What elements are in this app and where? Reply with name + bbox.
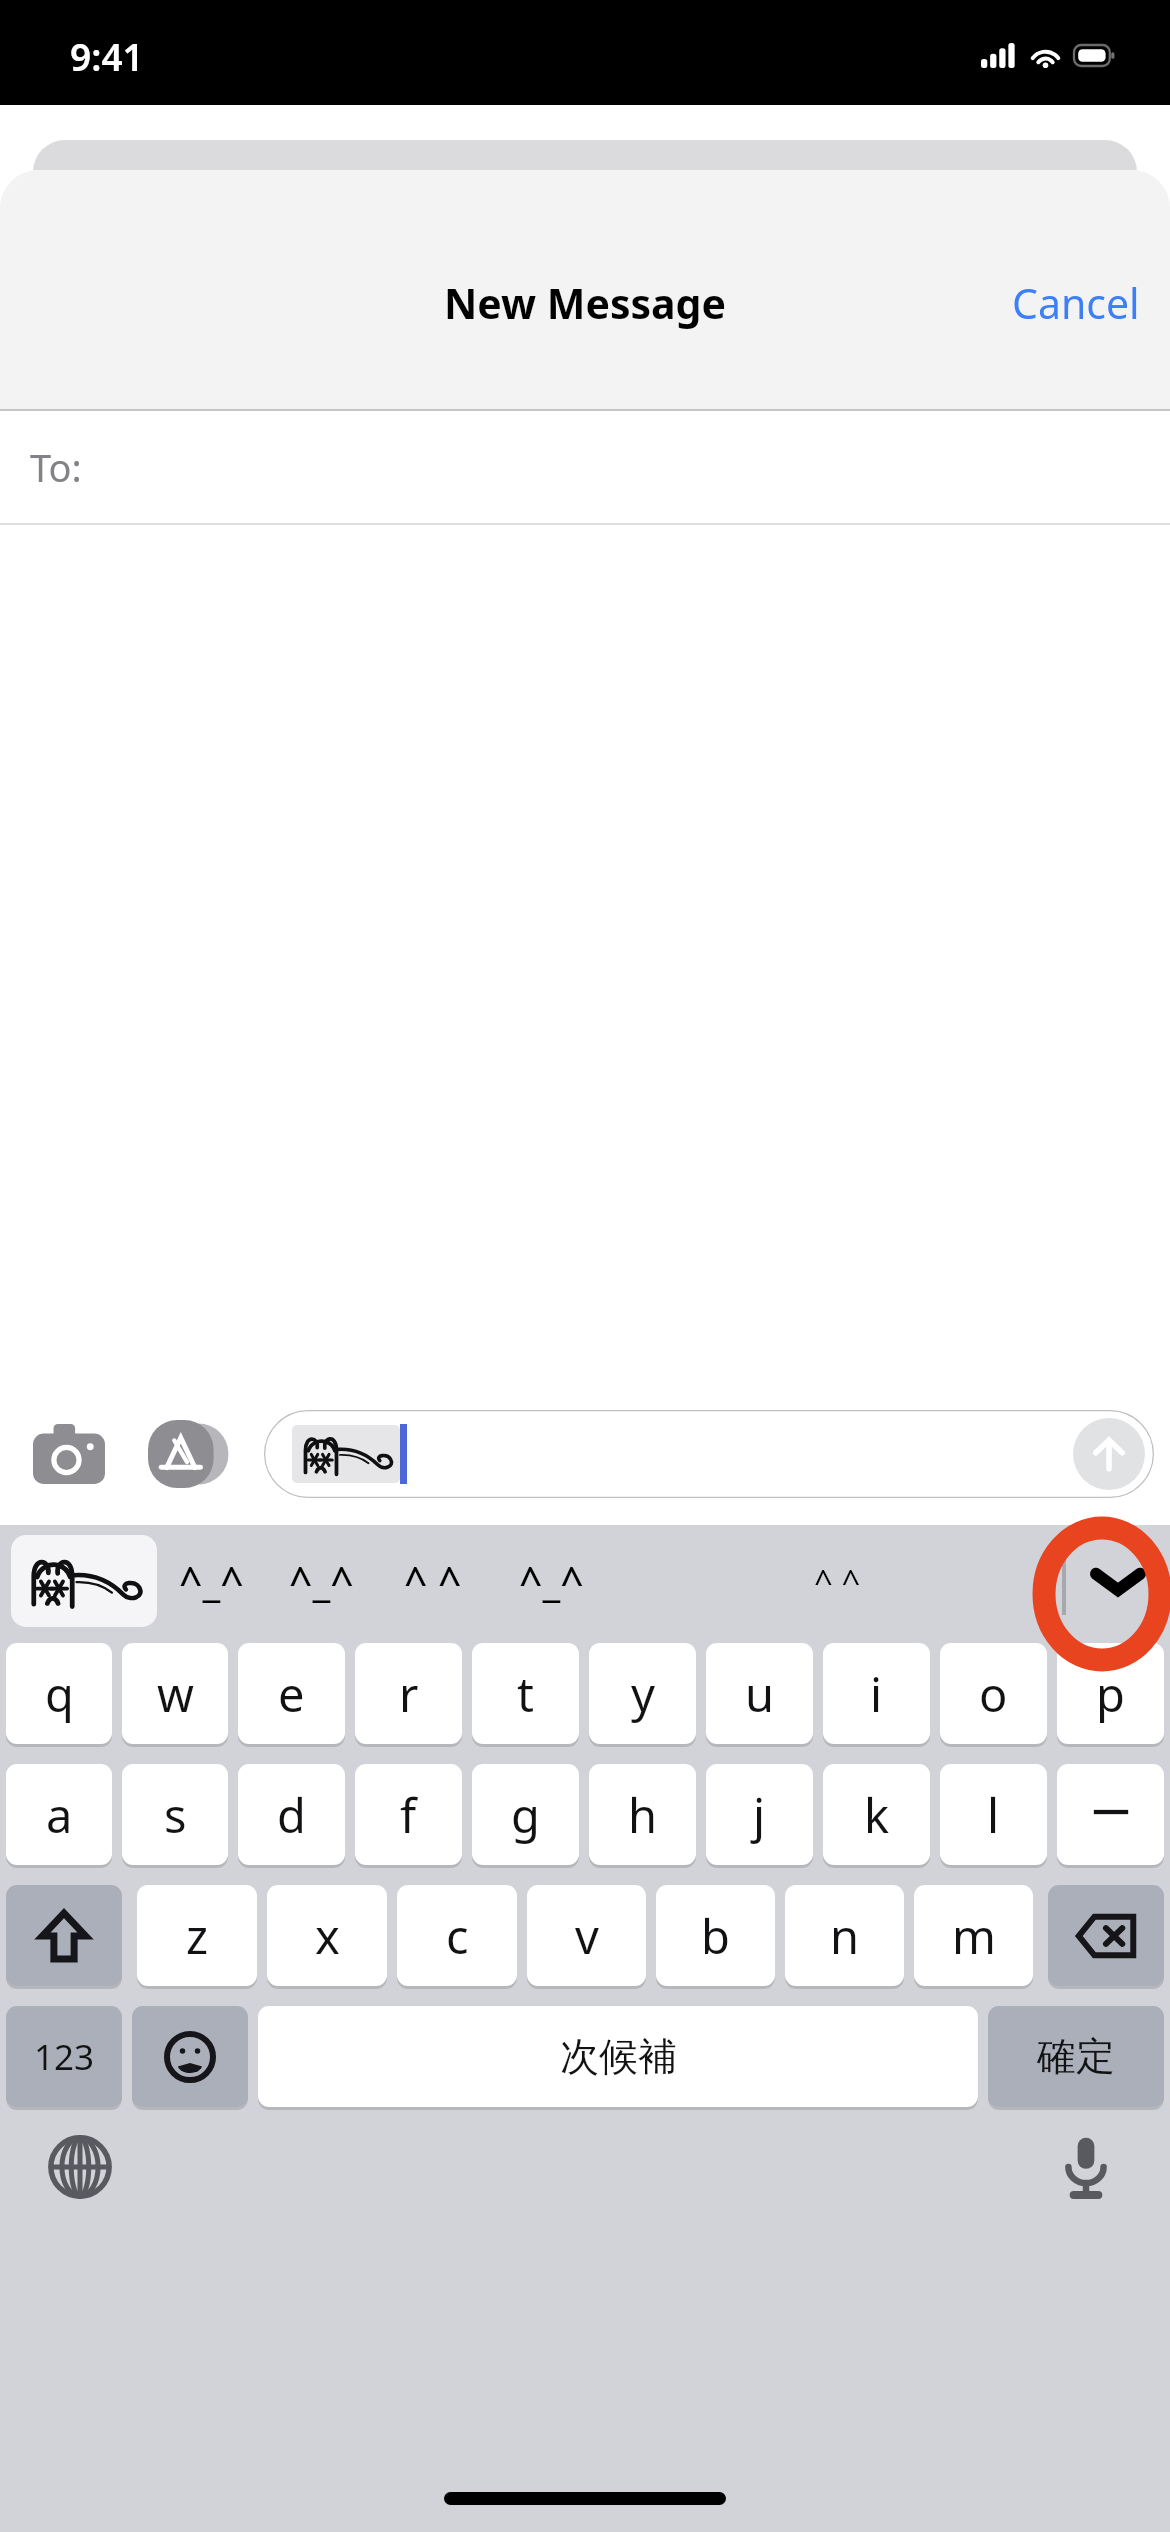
staticText: m — [952, 1904, 996, 1968]
staticText: h — [628, 1783, 658, 1847]
staticText: v — [575, 1904, 599, 1968]
button[interactable]: Camera — [20, 1405, 118, 1503]
button[interactable]: ^ ^ — [377, 1525, 489, 1637]
staticText: l — [987, 1783, 1000, 1847]
staticText: n — [830, 1904, 860, 1968]
staticText: To: — [30, 441, 82, 493]
staticText: b — [701, 1904, 730, 1968]
button[interactable]: x — [267, 1885, 387, 1986]
button[interactable]: m — [914, 1885, 1033, 1986]
staticText: u — [745, 1662, 775, 1726]
button[interactable]: j — [706, 1764, 813, 1865]
button[interactable]: Cancel — [982, 263, 1170, 343]
button[interactable]: l — [940, 1764, 1047, 1865]
staticText: 9:41 — [70, 31, 144, 81]
button[interactable]: Shift — [6, 1885, 122, 1986]
staticText: 123 — [34, 2033, 95, 2081]
staticText: 確定 — [1037, 2032, 1115, 2081]
button[interactable]: ^ ^ — [613, 1525, 1062, 1637]
button[interactable]: ^_^ — [157, 1525, 265, 1637]
staticText: j — [753, 1783, 766, 1847]
button[interactable]: Backspace — [1048, 1885, 1164, 1986]
button[interactable]: q — [6, 1643, 112, 1744]
staticText: r — [399, 1662, 419, 1726]
staticText: 次候補 — [560, 2032, 677, 2081]
staticText: ^ ^ — [814, 1559, 861, 1604]
button[interactable]: g — [472, 1764, 579, 1865]
staticText: z — [186, 1904, 209, 1968]
button[interactable]: y — [589, 1643, 696, 1744]
button[interactable]: Send — [1073, 1418, 1145, 1490]
staticText: o — [979, 1662, 1008, 1726]
button[interactable]: ^_^ — [265, 1525, 377, 1637]
button[interactable]: e — [238, 1643, 345, 1744]
staticText: i — [870, 1662, 883, 1726]
button[interactable]: z — [137, 1885, 257, 1986]
button[interactable]: Expand candidates — [1066, 1525, 1170, 1637]
button[interactable]: Send — [264, 1410, 1154, 1498]
button[interactable]: s — [122, 1764, 228, 1865]
button[interactable]: d — [238, 1764, 345, 1865]
button[interactable] — [11, 1535, 157, 1627]
staticText: y — [631, 1662, 655, 1726]
button[interactable]: Switch keyboard — [34, 2121, 126, 2213]
staticText: f — [400, 1783, 417, 1847]
staticText: e — [278, 1662, 305, 1726]
button[interactable]: h — [589, 1764, 696, 1865]
button[interactable]: r — [355, 1643, 462, 1744]
button[interactable]: a — [6, 1764, 112, 1865]
staticText: s — [164, 1783, 187, 1847]
button[interactable]: To: — [0, 411, 1170, 523]
button[interactable]: p — [1057, 1643, 1164, 1744]
staticText: k — [864, 1783, 890, 1847]
staticText: w — [157, 1662, 194, 1726]
button[interactable]: App Store apps — [140, 1405, 238, 1503]
button[interactable]: n — [785, 1885, 904, 1986]
button[interactable]: Numbers — [6, 2006, 122, 2107]
button[interactable]: v — [527, 1885, 646, 1986]
staticText: ^_^ — [519, 1553, 584, 1609]
button[interactable]: w — [122, 1643, 228, 1744]
button[interactable]: k — [823, 1764, 930, 1865]
button[interactable]: i — [823, 1643, 930, 1744]
staticText: p — [1096, 1662, 1125, 1726]
staticText: t — [517, 1662, 534, 1726]
staticText: d — [277, 1783, 306, 1847]
button[interactable]: Dictation — [1040, 2121, 1132, 2213]
staticText: x — [315, 1904, 340, 1968]
staticText: g — [511, 1783, 540, 1847]
staticText: ー — [1090, 1788, 1132, 1841]
button[interactable]: ^_^ — [489, 1525, 613, 1637]
button[interactable]: Confirm — [988, 2006, 1164, 2107]
staticText: ^ ^ — [404, 1553, 462, 1609]
staticText: ^_^ — [179, 1553, 244, 1609]
staticText: ^_^ — [289, 1553, 354, 1609]
button[interactable]: f — [355, 1764, 462, 1865]
staticText: c — [446, 1904, 469, 1968]
button[interactable]: ー — [1057, 1764, 1164, 1865]
button[interactable]: t — [472, 1643, 579, 1744]
button[interactable]: Emoji — [132, 2006, 248, 2107]
button[interactable]: u — [706, 1643, 813, 1744]
staticText: q — [45, 1662, 74, 1726]
button[interactable]: c — [397, 1885, 517, 1986]
button[interactable]: 次候補 — [258, 2006, 978, 2107]
button[interactable]: o — [940, 1643, 1047, 1744]
button[interactable]: New Message — [438, 269, 732, 337]
button[interactable]: b — [656, 1885, 775, 1986]
staticText: a — [46, 1783, 73, 1847]
